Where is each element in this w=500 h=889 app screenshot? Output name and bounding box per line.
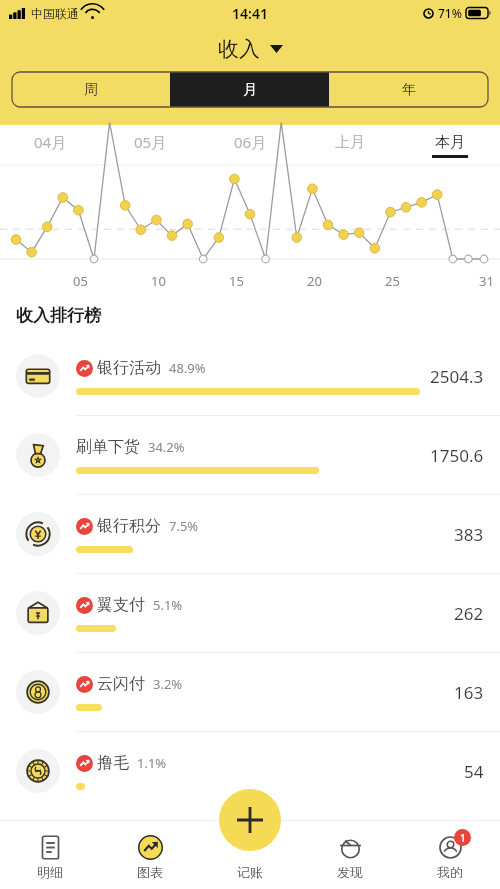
staticText: 05月: [134, 132, 167, 152]
staticText: 71%: [438, 5, 462, 21]
staticText: 25: [385, 272, 400, 290]
staticText: 20: [307, 272, 322, 290]
staticText: 06月: [234, 132, 267, 152]
staticText: 中国联通: [31, 6, 79, 21]
staticText: 1750.6: [430, 444, 484, 467]
staticText: 翼支付: [97, 595, 145, 615]
staticText: 明细: [37, 864, 63, 880]
button[interactable]: 上月: [300, 125, 400, 165]
button[interactable]: 月: [170, 72, 329, 107]
staticText: 04月: [34, 132, 67, 152]
staticText: 34.2%: [148, 438, 185, 456]
staticText: 3.2%: [153, 675, 183, 693]
staticText: 10: [151, 272, 166, 290]
button[interactable]: 云闪付: [0, 653, 500, 731]
button[interactable]: 06月: [200, 125, 300, 165]
staticText: 15: [229, 272, 244, 290]
staticText: 1.1%: [137, 754, 167, 772]
staticText: 刷单下货: [76, 437, 140, 457]
button[interactable]: 银行积分: [0, 495, 500, 573]
button[interactable]: 发现: [300, 820, 400, 889]
staticText: 31: [479, 272, 494, 290]
staticText: 2504.3: [430, 365, 484, 388]
staticText: 收入排行榜: [16, 305, 101, 326]
staticText: 银行活动: [97, 358, 161, 378]
button[interactable]: 收入: [218, 36, 283, 62]
button[interactable]: 04月: [0, 125, 100, 165]
staticText: 记账: [237, 864, 263, 880]
button[interactable]: 05月: [100, 125, 200, 165]
staticText: 银行积分: [97, 516, 161, 536]
staticText: 163: [454, 681, 484, 704]
button[interactable]: 年: [329, 72, 488, 107]
staticText: 上月: [335, 133, 365, 152]
staticText: 月: [243, 81, 257, 99]
staticText: 7.5%: [169, 517, 199, 535]
button[interactable]: 明细: [0, 820, 100, 889]
button[interactable]: 本月: [400, 125, 500, 165]
button[interactable]: 周: [12, 72, 170, 107]
staticText: 发现: [337, 864, 363, 880]
staticText: 48.9%: [169, 359, 206, 377]
staticText: 收入: [218, 36, 260, 62]
button[interactable]: 银行活动: [0, 337, 500, 415]
staticText: 383: [454, 523, 484, 546]
button[interactable]: 刷单下货: [0, 416, 500, 494]
staticText: 年: [402, 81, 416, 99]
staticText: 54: [464, 760, 484, 783]
staticText: 撸毛: [97, 753, 129, 773]
staticText: 图表: [137, 864, 163, 880]
staticText: 云闪付: [97, 674, 145, 694]
button[interactable]: 1: [400, 820, 500, 889]
staticText: 05: [73, 272, 88, 290]
button[interactable]: 撸毛: [0, 732, 500, 810]
button[interactable]: 图表: [100, 820, 200, 889]
staticText: 我的: [437, 864, 463, 880]
button[interactable]: 翼支付: [0, 574, 500, 652]
staticText: 262: [454, 602, 484, 625]
staticText: 周: [84, 81, 98, 99]
staticText: 本月: [435, 133, 465, 152]
staticText: 14:41: [232, 4, 268, 23]
staticText: 5.1%: [153, 596, 183, 614]
button[interactable]: 记账: [200, 820, 300, 889]
button[interactable]: 记账 添加: [219, 789, 281, 851]
staticText: 1: [460, 831, 466, 845]
